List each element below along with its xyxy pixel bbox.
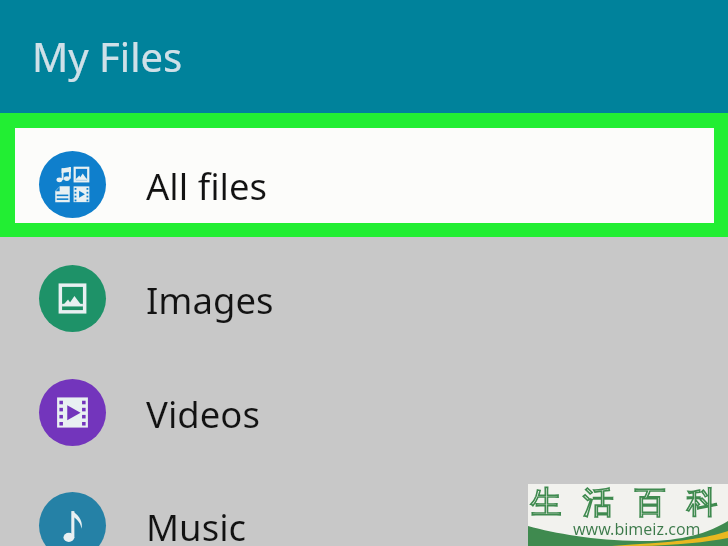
button[interactable]: Images [0, 241, 728, 354]
staticText: Videos [146, 389, 260, 439]
button[interactable]: Music [0, 467, 728, 546]
staticText: www.bimeiz.com [573, 518, 728, 540]
staticText: 生活百科 [528, 484, 720, 522]
button[interactable]: All files [15, 128, 714, 223]
button[interactable]: Videos [0, 354, 728, 467]
staticText: My Files [32, 29, 183, 83]
staticText: All files [146, 161, 268, 211]
staticText: Music [146, 502, 247, 546]
staticText: Images [146, 275, 274, 325]
